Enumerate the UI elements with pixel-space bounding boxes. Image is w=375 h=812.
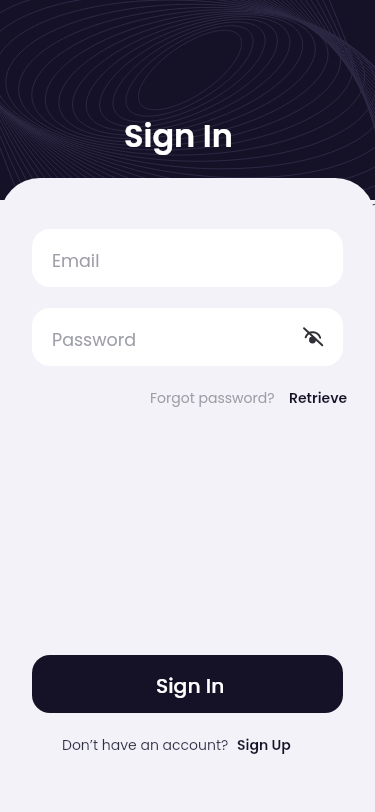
staticText: Sign Up: [237, 735, 291, 755]
button[interactable]: Show password: [299, 323, 327, 351]
staticText: Don’t have an account?: [62, 735, 229, 755]
staticText: Sign In: [124, 113, 233, 158]
staticText: Retrieve: [289, 388, 348, 408]
staticText: Email: [52, 249, 100, 274]
staticText: Forgot password?: [150, 388, 275, 408]
button[interactable]: Password: [32, 308, 343, 366]
button[interactable]: Sign In: [32, 655, 343, 713]
staticText: Password: [52, 328, 137, 353]
button[interactable]: Retrieve: [289, 388, 348, 408]
staticText: Sign In: [156, 672, 225, 700]
button[interactable]: Sign Up: [237, 735, 291, 755]
button[interactable]: Email: [32, 229, 343, 287]
